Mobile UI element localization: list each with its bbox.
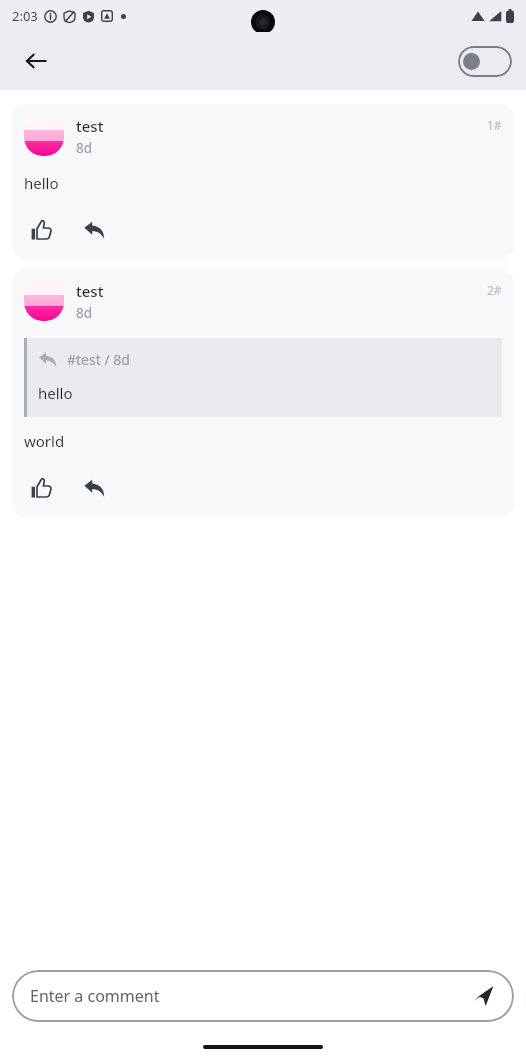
button[interactable]: Avatar	[24, 281, 64, 321]
staticText: 2:03	[12, 7, 38, 25]
staticText: #test / 8d	[67, 350, 130, 369]
staticText: hello	[24, 173, 59, 193]
button[interactable]: Like	[24, 471, 58, 505]
button[interactable]: Toggle	[458, 46, 512, 77]
button[interactable]: Enter a comment	[12, 970, 514, 1022]
staticText: 8d	[76, 139, 93, 157]
button[interactable]: Back	[14, 39, 58, 83]
staticText: test	[76, 281, 104, 301]
staticText: 1#	[487, 117, 502, 133]
staticText: 2#	[487, 282, 502, 298]
button[interactable]: #test / 8d	[24, 338, 502, 417]
button[interactable]: Avatar	[12, 269, 514, 517]
staticText: test	[76, 116, 104, 136]
staticText: 8d	[76, 304, 93, 322]
staticText: hello	[38, 383, 73, 403]
staticText: world	[24, 431, 65, 451]
button[interactable]: Send	[466, 979, 500, 1013]
button[interactable]: Reply	[77, 213, 111, 247]
button[interactable]: Reply	[77, 471, 111, 505]
button[interactable]: Avatar	[12, 104, 514, 259]
button[interactable]: Avatar	[24, 116, 64, 156]
staticText: Enter a comment	[30, 985, 466, 1007]
button[interactable]: Like	[24, 213, 58, 247]
